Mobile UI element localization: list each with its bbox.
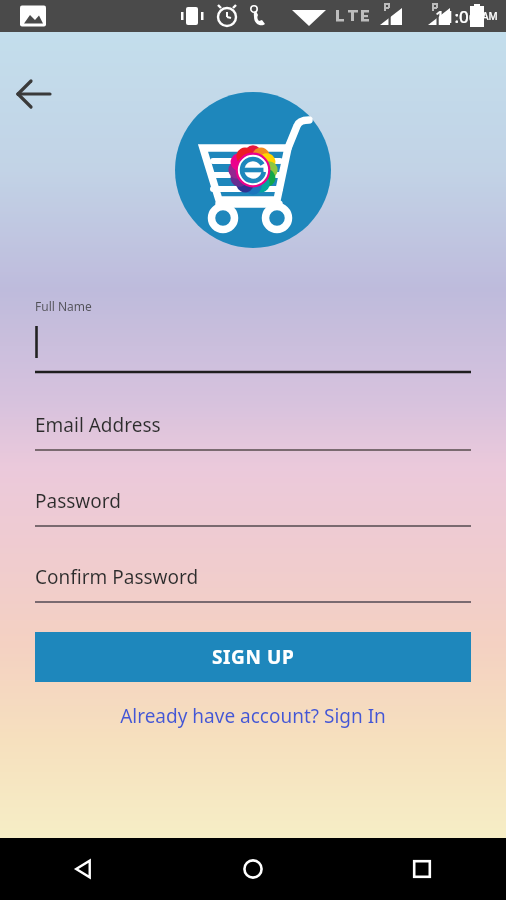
staticText: Password [35,488,121,514]
button[interactable]: Already have account? Sign In [35,696,471,736]
staticText: Full Name [35,298,92,314]
button[interactable]: Email Address [35,404,471,452]
staticText: Already have account? Sign In [120,703,386,729]
button[interactable]: Full Name [35,298,471,376]
staticText: Email Address [35,412,161,438]
button[interactable]: Back [8,68,60,120]
staticText: 11:06 [435,5,479,28]
button[interactable]: Back [0,838,168,900]
button[interactable]: Confirm Password [35,556,471,604]
staticText: SIGN UP [212,644,295,670]
staticText: AM [482,9,498,23]
button[interactable]: Home [168,838,337,900]
button[interactable]: SIGN UP [35,632,471,682]
staticText: Confirm Password [35,564,199,590]
button[interactable]: Password [35,480,471,528]
button[interactable]: Recent apps [337,838,506,900]
